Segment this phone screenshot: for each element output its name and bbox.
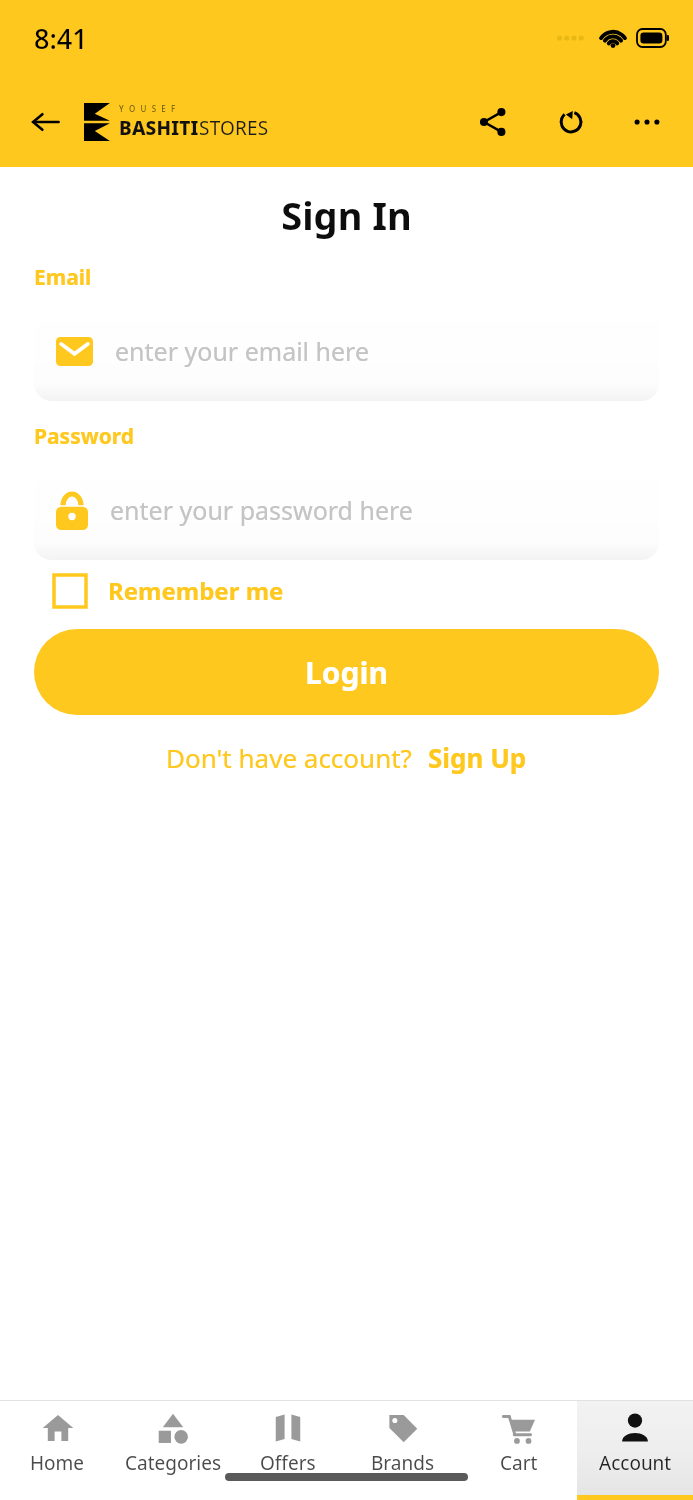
button[interactable]: enter your password here	[34, 460, 659, 560]
button[interactable]: Login	[34, 629, 659, 715]
staticText: BASHITI	[119, 115, 199, 141]
staticText: Sign In	[0, 189, 693, 241]
button[interactable]: Sign Up	[428, 740, 527, 775]
button[interactable]: Cart	[461, 1401, 577, 1500]
staticText: Account	[599, 1450, 672, 1476]
button[interactable]: enter your email here	[34, 301, 659, 401]
button[interactable]: Don't have account?	[166, 740, 412, 775]
button[interactable]: Home	[0, 1401, 115, 1500]
button[interactable]: Share	[467, 96, 519, 148]
button[interactable]: Back	[20, 96, 72, 148]
button[interactable]: Brands	[345, 1401, 461, 1500]
staticText: Remember me	[108, 574, 284, 607]
staticText: Offers	[260, 1450, 316, 1476]
button[interactable]: More options	[621, 96, 673, 148]
staticText: Categories	[125, 1450, 221, 1476]
staticText: Login	[305, 652, 388, 693]
staticText: enter your password here	[110, 493, 413, 527]
button[interactable]: Account	[577, 1401, 693, 1500]
button[interactable]: Offers	[230, 1401, 345, 1500]
staticText: Home	[30, 1450, 85, 1476]
staticText: 8:41	[34, 20, 88, 57]
staticText: Email	[34, 263, 92, 292]
staticText: STORES	[199, 115, 269, 141]
staticText: enter your email here	[115, 334, 370, 368]
staticText: Password	[34, 422, 135, 451]
button[interactable]: Remember me	[34, 574, 284, 607]
button[interactable]: Categories	[115, 1401, 230, 1500]
staticText: Cart	[500, 1450, 538, 1476]
button[interactable]: Refresh	[545, 96, 597, 148]
staticText: Brands	[371, 1450, 435, 1476]
staticText: Y O U S E F	[119, 103, 177, 114]
